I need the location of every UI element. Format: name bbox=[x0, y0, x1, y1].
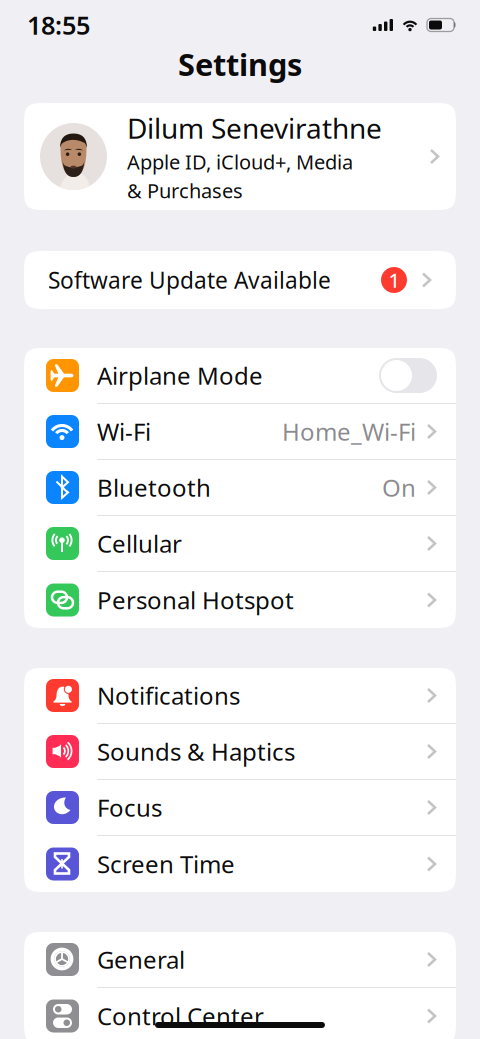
staticText: On bbox=[382, 472, 416, 503]
button[interactable]: Focus bbox=[24, 780, 456, 836]
staticText: Home_Wi-Fi bbox=[282, 416, 416, 447]
staticText: General bbox=[97, 944, 185, 975]
button[interactable]: General bbox=[24, 932, 456, 988]
staticText: Bluetooth bbox=[97, 472, 211, 503]
staticText: Focus bbox=[97, 792, 162, 823]
staticText: Dilum Senevirathne bbox=[127, 109, 382, 146]
staticText: Screen Time bbox=[97, 848, 235, 880]
button[interactable]: Dilum Senevirathne bbox=[24, 103, 456, 210]
staticText: Notifications bbox=[97, 680, 240, 711]
button[interactable]: Control Center bbox=[24, 988, 456, 1039]
button[interactable]: Notifications bbox=[24, 668, 456, 724]
button[interactable]: Cellular bbox=[24, 516, 456, 572]
button[interactable]: Wi-Fi bbox=[24, 404, 456, 460]
staticText: Airplane Mode bbox=[97, 360, 263, 391]
button[interactable]: Bluetooth bbox=[24, 460, 456, 516]
staticText: 1 bbox=[388, 267, 399, 293]
button[interactable]: Personal Hotspot bbox=[24, 572, 456, 628]
staticText: & Purchases bbox=[127, 177, 243, 204]
staticText: Wi-Fi bbox=[97, 416, 151, 447]
staticText: Personal Hotspot bbox=[97, 584, 294, 616]
button[interactable]: Screen Time bbox=[24, 836, 456, 892]
staticText: Cellular bbox=[97, 528, 182, 559]
button[interactable]: Software Update Available bbox=[24, 251, 456, 309]
staticText: Settings bbox=[178, 44, 302, 84]
staticText: 18:55 bbox=[27, 8, 90, 42]
button[interactable]: Sounds & Haptics bbox=[24, 724, 456, 780]
staticText: Sounds & Haptics bbox=[97, 736, 295, 767]
staticText: Control Center bbox=[97, 1000, 264, 1032]
staticText: Apple ID, iCloud+, Media bbox=[127, 148, 353, 175]
button[interactable]: Airplane Mode bbox=[24, 348, 456, 404]
staticText: Software Update Available bbox=[48, 265, 331, 295]
